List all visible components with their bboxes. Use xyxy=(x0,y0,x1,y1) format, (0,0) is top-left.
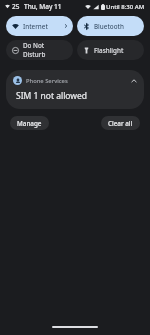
button[interactable]: Internet xyxy=(6,16,73,36)
button[interactable]: Clear all xyxy=(101,116,140,130)
staticText: Internet xyxy=(23,22,48,31)
button[interactable]: Bluetooth xyxy=(77,16,144,36)
button[interactable]: Manage xyxy=(10,116,49,130)
staticText: Phone Services xyxy=(26,77,68,85)
staticText: Until 8:30 AM xyxy=(106,3,145,11)
staticText: Flashlight xyxy=(94,46,124,55)
staticText: Thu, May 11 xyxy=(24,2,62,11)
staticText: Manage xyxy=(17,119,42,128)
staticText: SIM 1 not allowed xyxy=(16,90,88,102)
staticText: Bluetooth xyxy=(94,22,124,31)
button[interactable]: Collapse notification xyxy=(128,75,139,86)
staticText: Clear all xyxy=(108,119,133,128)
staticText: 25 xyxy=(12,2,20,11)
button[interactable]: Do Not Disturb xyxy=(6,40,73,60)
button[interactable]: Flashlight xyxy=(77,40,144,60)
button[interactable]: Phone Services xyxy=(6,70,144,109)
staticText: Do Not Disturb xyxy=(23,41,68,59)
